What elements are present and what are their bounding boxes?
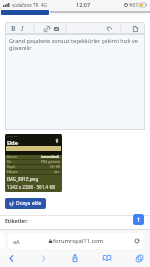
button[interactable]: Bookmarks (99, 250, 115, 266)
button[interactable]: Forward (35, 250, 51, 266)
staticText: 4G (41, 2, 47, 8)
staticText: Etiketler: (5, 218, 28, 225)
button[interactable]: Delete attachment (54, 137, 60, 143)
staticText: 561 KB (50, 165, 60, 169)
button[interactable]: Tabs (131, 250, 147, 266)
staticText: IMG_801E.png (7, 176, 39, 182)
button[interactable]: Reload page (134, 238, 140, 244)
staticText: B (11, 24, 16, 33)
staticText: 1242 x 2208 · 561.4 KB (7, 184, 56, 190)
button[interactable]: I (18, 23, 27, 34)
staticText: aA (13, 238, 20, 245)
button[interactable]: Share (67, 250, 83, 266)
staticText: Ekle (7, 139, 18, 146)
staticText: üye (54, 170, 60, 174)
staticText: Dosya ekle (16, 200, 42, 207)
staticText: I (21, 24, 24, 33)
button[interactable]: Back (3, 250, 19, 266)
staticText: vodafone TR (12, 2, 39, 8)
button[interactable]: Undo (105, 23, 114, 34)
staticText: %57 (129, 2, 138, 8)
button[interactable]: Dosya ekle (5, 198, 46, 209)
staticText: dosya ekle (7, 135, 18, 138)
button[interactable]: Text size (8, 233, 144, 249)
button[interactable]: B (9, 23, 18, 34)
staticText: 12:07 (76, 1, 91, 8)
staticText: Tür (7, 160, 12, 164)
staticText: Grand paşabete sonsuz teşekkürler çekirn… (9, 37, 141, 51)
button[interactable]: Scroll to top (133, 214, 144, 225)
staticText: forumroyal11.com (53, 237, 104, 245)
button[interactable]: Insert image (52, 23, 61, 34)
staticText: Boyut (7, 165, 16, 169)
staticText: Ekleyen (7, 170, 18, 174)
staticText: tamamlandı (41, 155, 60, 159)
button[interactable]: View source (131, 23, 140, 34)
staticText: ... (18, 140, 22, 146)
button[interactable]: Insert link (42, 23, 51, 34)
staticText: Durum (7, 155, 17, 159)
button[interactable]: Text size (13, 238, 20, 245)
staticText: PNG görüntü (41, 160, 60, 164)
